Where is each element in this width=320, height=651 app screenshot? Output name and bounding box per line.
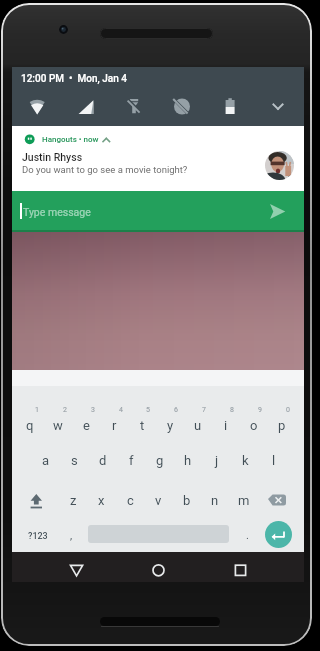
button[interactable] [227, 556, 254, 578]
staticText: k [242, 453, 249, 468]
staticText: 4 [119, 406, 123, 414]
staticText: s [71, 453, 78, 468]
staticText: r [112, 418, 117, 433]
button[interactable]: t [128, 414, 156, 436]
staticText: i [224, 418, 228, 433]
button[interactable]: x [87, 489, 115, 511]
staticText: y [167, 418, 174, 433]
staticText: t [140, 418, 145, 433]
staticText: ?123 [28, 531, 48, 542]
staticText: h [184, 453, 192, 468]
staticText: 8 [230, 406, 234, 414]
button[interactable]: 7 [190, 399, 218, 421]
staticText: o [250, 418, 258, 433]
staticText: z [70, 493, 77, 508]
button[interactable] [71, 92, 101, 122]
button[interactable]: o [240, 414, 268, 436]
staticText: Justin Rhyss [22, 151, 83, 163]
button[interactable]: j [203, 449, 231, 471]
staticText: d [99, 453, 107, 468]
button[interactable]: e [72, 414, 100, 436]
staticText: , [70, 529, 73, 542]
staticText: x [98, 493, 105, 508]
button[interactable]: y [156, 414, 184, 436]
button[interactable]: h [174, 449, 202, 471]
staticText: 7 [202, 406, 206, 414]
button[interactable] [63, 556, 90, 578]
button[interactable]: k [231, 449, 259, 471]
button[interactable]: p [268, 414, 296, 436]
button[interactable]: Hangouts • now [12, 126, 304, 191]
button[interactable]: a [32, 449, 60, 471]
staticText: m [238, 493, 250, 508]
button[interactable] [167, 92, 197, 122]
button[interactable]: u [184, 414, 212, 436]
staticText: u [194, 418, 202, 433]
button[interactable]: b [173, 489, 201, 511]
staticText: q [26, 418, 34, 433]
button[interactable]: c [116, 489, 144, 511]
button[interactable] [215, 92, 245, 122]
button[interactable]: z [59, 489, 87, 511]
staticText: 1 [35, 406, 39, 414]
staticText: 6 [174, 406, 178, 414]
button[interactable] [265, 521, 292, 548]
staticText: . [246, 529, 249, 542]
staticText: p [278, 418, 286, 433]
button[interactable]: n [201, 489, 229, 511]
button[interactable]: d [89, 449, 117, 471]
button[interactable]: 0 [274, 399, 302, 421]
staticText: 5 [146, 406, 150, 414]
button[interactable]: , [57, 524, 85, 546]
staticText: f [129, 453, 134, 468]
button[interactable]: q [16, 414, 44, 436]
staticText: e [83, 418, 90, 433]
button[interactable] [145, 556, 172, 578]
staticText: w [53, 418, 63, 433]
button[interactable]: g [146, 449, 174, 471]
button[interactable]: v [144, 489, 172, 511]
staticText: Do you want to go see a movie tonight? [22, 164, 188, 175]
button[interactable]: 2 [51, 399, 79, 421]
staticText: c [127, 493, 134, 508]
button[interactable] [262, 196, 293, 227]
button[interactable]: Type message [12, 191, 304, 232]
staticText: Hangouts • now [42, 135, 99, 144]
button[interactable]: f [117, 449, 145, 471]
button[interactable]: s [60, 449, 88, 471]
staticText: l [272, 453, 276, 468]
button[interactable]: l [260, 449, 288, 471]
button[interactable]: . [233, 524, 261, 546]
button[interactable]: 4 [107, 399, 135, 421]
staticText: 9 [258, 406, 262, 414]
staticText: j [215, 453, 219, 468]
button[interactable]: 6 [162, 399, 190, 421]
button[interactable]: ?123 [24, 526, 52, 546]
staticText: n [211, 493, 219, 508]
button[interactable]: 9 [246, 399, 274, 421]
staticText: a [42, 453, 50, 468]
button[interactable]: m [230, 489, 258, 511]
staticText: v [155, 493, 162, 508]
button[interactable]: 3 [79, 399, 107, 421]
button[interactable]: w [44, 414, 72, 436]
staticText: b [183, 493, 191, 508]
staticText: 12:00 PM • Mon, Jan 4 [21, 73, 127, 85]
button[interactable]: 5 [134, 399, 162, 421]
button[interactable] [119, 92, 149, 122]
button[interactable]: i [212, 414, 240, 436]
staticText: 2 [63, 406, 67, 414]
button[interactable] [22, 92, 52, 122]
button[interactable] [23, 488, 50, 514]
staticText: Type message [23, 206, 91, 218]
button[interactable] [263, 92, 293, 122]
button[interactable] [265, 492, 299, 512]
button[interactable]: r [100, 414, 128, 436]
staticText: 3 [91, 406, 95, 414]
button[interactable]: 8 [218, 399, 246, 421]
button[interactable]: 1 [23, 399, 51, 421]
staticText: g [156, 453, 164, 468]
staticText: 0 [286, 406, 290, 414]
